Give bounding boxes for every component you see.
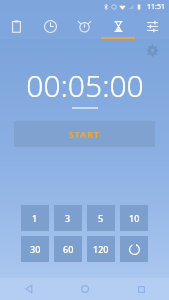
staticText: 10 — [129, 212, 140, 224]
staticText: START — [69, 128, 100, 140]
button[interactable]: Home — [57, 278, 113, 300]
button[interactable]: 1 — [21, 205, 49, 231]
staticText: 1 — [32, 212, 38, 224]
button[interactable]: 120 — [87, 236, 115, 262]
button[interactable]: Settings — [143, 41, 161, 59]
staticText: 60 — [63, 243, 74, 255]
button[interactable]: 10 — [120, 205, 148, 231]
button[interactable]: START — [14, 121, 155, 147]
button[interactable]: 5 — [87, 205, 115, 231]
staticText: 3 — [65, 212, 71, 224]
button[interactable]: Clock — [33, 13, 67, 39]
button[interactable]: Notes — [0, 13, 33, 39]
button[interactable]: 60 — [54, 236, 82, 262]
staticText: 30 — [30, 243, 41, 255]
staticText: 5 — [98, 212, 104, 224]
button[interactable]: 30 — [21, 236, 49, 262]
button[interactable]: Settings — [135, 13, 169, 39]
button[interactable]: Recents — [113, 278, 169, 300]
button[interactable]: Alarm — [67, 13, 101, 39]
button[interactable]: Reset — [120, 236, 148, 262]
button[interactable]: Timer — [101, 13, 135, 39]
button[interactable]: Back — [0, 278, 57, 300]
staticText: 00:05:00 — [26, 65, 144, 106]
staticText: 120 — [93, 243, 109, 255]
button[interactable]: 3 — [54, 205, 82, 231]
staticText: 11:51 — [147, 2, 165, 12]
